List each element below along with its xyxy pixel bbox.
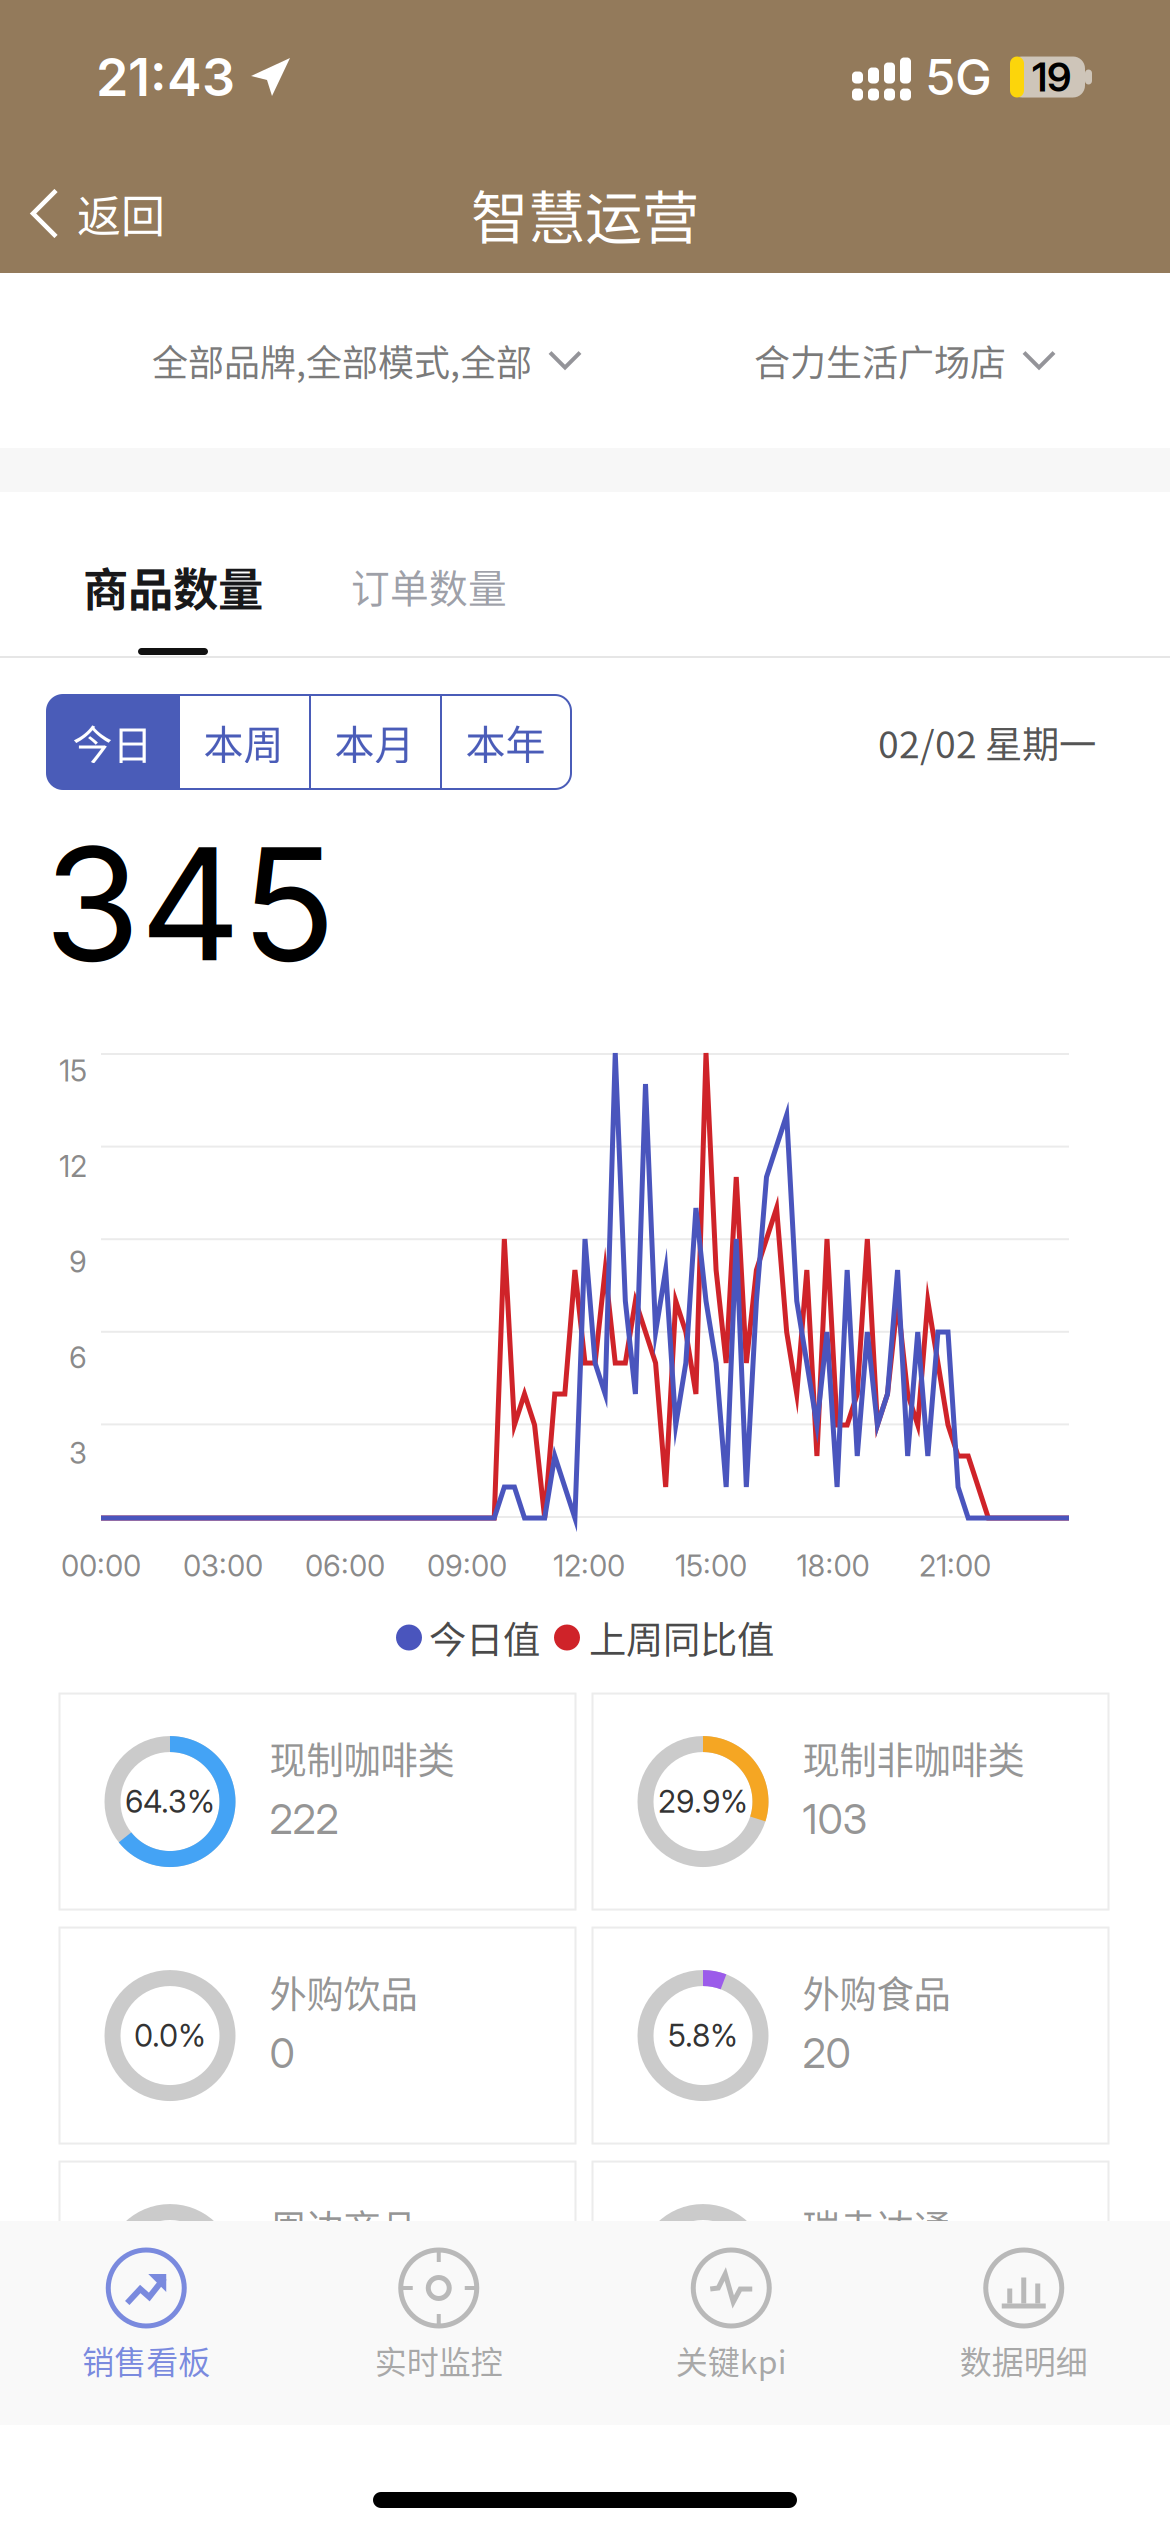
staticText: 今日 bbox=[72, 713, 152, 771]
staticText: 关键kpi bbox=[676, 2337, 787, 2383]
button[interactable]: 5.8% bbox=[592, 1927, 1108, 2143]
staticText: 现制非咖啡类 bbox=[802, 1731, 1024, 1785]
staticText: 本年 bbox=[465, 713, 545, 771]
staticText: 现制咖啡类 bbox=[269, 1731, 454, 1785]
staticText: 5G bbox=[925, 47, 992, 107]
staticText: 瑞幸达通 bbox=[802, 2199, 950, 2253]
button[interactable]: 订单数量 bbox=[351, 492, 507, 656]
staticText: 全部品牌,全部模式,全部 bbox=[152, 334, 532, 386]
staticText: 18:00 bbox=[796, 1548, 869, 1583]
staticText: 103 bbox=[802, 1794, 867, 1844]
staticText: 15 bbox=[59, 1053, 87, 1088]
staticText: 64.3% bbox=[125, 1783, 215, 1820]
staticText: 本周 bbox=[203, 713, 283, 771]
staticText: 5.8% bbox=[668, 2017, 738, 2054]
staticText: 返回 bbox=[77, 182, 165, 245]
staticText: 智慧运营 bbox=[471, 172, 699, 255]
staticText: 222 bbox=[269, 1794, 338, 1844]
button[interactable]: 合力生活广场店 bbox=[754, 334, 1056, 386]
button[interactable]: 商品数量 bbox=[83, 492, 263, 656]
staticText: 20 bbox=[802, 2028, 850, 2078]
button[interactable]: 0.0% bbox=[59, 2161, 575, 2377]
staticText: 数据明细 bbox=[960, 2337, 1088, 2383]
staticText: 06:00 bbox=[305, 1548, 385, 1583]
staticText: 销售看板 bbox=[82, 2337, 210, 2383]
staticText: 商品数量 bbox=[83, 554, 263, 620]
staticText: 15:00 bbox=[675, 1548, 747, 1583]
staticText: 0.0% bbox=[134, 2251, 206, 2288]
staticText: 周边商品 bbox=[269, 2199, 417, 2253]
staticText: 本月 bbox=[334, 713, 414, 771]
staticText: 12:00 bbox=[553, 1548, 625, 1583]
staticText: 合力生活广场店 bbox=[754, 334, 1006, 386]
staticText: 订单数量 bbox=[351, 558, 507, 614]
staticText: 345 bbox=[44, 809, 336, 998]
button[interactable]: 数据明细 bbox=[877, 2221, 1170, 2425]
button[interactable]: 销售看板 bbox=[0, 2221, 292, 2425]
staticText: 00:00 bbox=[61, 1548, 141, 1583]
button[interactable]: 0.0% bbox=[59, 1927, 575, 2143]
staticText: 21:00 bbox=[919, 1548, 991, 1583]
staticText: 29.9% bbox=[658, 1783, 748, 1820]
staticText: 09:00 bbox=[427, 1548, 507, 1583]
staticText: 21:43 bbox=[96, 45, 235, 108]
staticText: 02/02 星期一 bbox=[878, 715, 1096, 769]
button[interactable]: 29.9% bbox=[592, 1693, 1108, 1909]
button[interactable]: 实时监控 bbox=[292, 2221, 585, 2425]
staticText: 0.0% bbox=[134, 2017, 206, 2054]
staticText: 0 bbox=[269, 2028, 294, 2078]
staticText: 今日值 bbox=[429, 1610, 540, 1665]
button[interactable]: 关键kpi bbox=[585, 2221, 877, 2425]
staticText: 外购食品 bbox=[802, 1965, 950, 2019]
staticText: 0.0% bbox=[667, 2251, 739, 2288]
staticText: 9 bbox=[69, 1244, 87, 1280]
button[interactable]: 0.0% bbox=[592, 2161, 1108, 2377]
button[interactable]: 本月 bbox=[309, 695, 440, 789]
button[interactable]: 64.3% bbox=[59, 1693, 575, 1909]
button[interactable]: 全部品牌,全部模式,全部 bbox=[152, 334, 582, 386]
button[interactable]: 今日 bbox=[47, 695, 178, 789]
staticText: 03:00 bbox=[183, 1548, 263, 1583]
staticText: 上周同比值 bbox=[589, 1610, 774, 1665]
staticText: 实时监控 bbox=[375, 2337, 503, 2383]
button[interactable]: 本年 bbox=[440, 695, 571, 789]
button[interactable]: 本周 bbox=[178, 695, 309, 789]
staticText: 外购饮品 bbox=[269, 1965, 417, 2019]
staticText: 19 bbox=[1032, 53, 1071, 101]
staticText: 3 bbox=[69, 1435, 87, 1471]
staticText: 12 bbox=[59, 1149, 87, 1184]
staticText: 6 bbox=[69, 1340, 87, 1375]
button[interactable]: 返回 bbox=[0, 162, 195, 265]
